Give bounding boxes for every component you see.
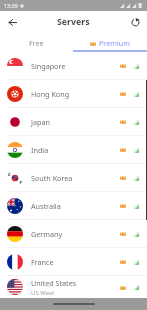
button[interactable]: Germany (0, 220, 147, 248)
button[interactable]: Premium (73, 33, 147, 52)
staticText: Hong Kong (31, 89, 70, 99)
button[interactable]: France (0, 248, 147, 276)
staticText: Australia (31, 201, 61, 211)
staticText: France (31, 257, 54, 267)
button[interactable]: Back (0, 11, 24, 33)
staticText: Free (29, 38, 44, 48)
button[interactable]: Refresh (123, 11, 147, 33)
button[interactable]: South Korea (0, 164, 147, 192)
staticText: 13:39 (4, 2, 18, 9)
button[interactable]: Japan (0, 108, 147, 136)
button[interactable]: Free (0, 33, 73, 52)
staticText: Premium (99, 38, 130, 48)
staticText: South Korea (31, 173, 73, 183)
button[interactable]: United States (0, 276, 147, 298)
staticText: Japan (31, 117, 50, 127)
staticText: Germany (31, 229, 63, 239)
button[interactable]: Australia (0, 192, 147, 220)
button[interactable]: India (0, 136, 147, 164)
staticText: US West (31, 289, 55, 297)
button[interactable]: Hong Kong (0, 80, 147, 108)
button[interactable]: Singapore (0, 52, 147, 80)
staticText: India (31, 145, 49, 155)
staticText: Singapore (31, 61, 66, 71)
staticText: Servers (57, 16, 90, 28)
staticText: United States (31, 278, 77, 288)
